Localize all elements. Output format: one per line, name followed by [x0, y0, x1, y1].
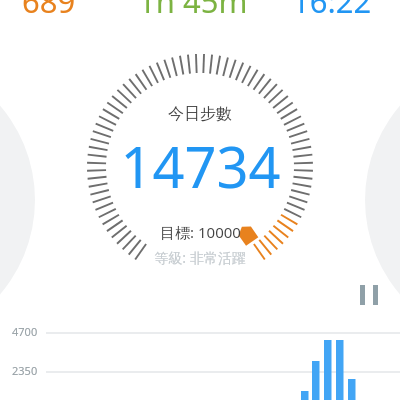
staticText: 689: [22, 0, 76, 22]
staticText: 14734: [120, 128, 281, 204]
staticText: 目標: 10000: [160, 222, 241, 242]
staticText: 等級: 非常活躍: [154, 248, 246, 267]
button[interactable]: 689: [22, 0, 76, 22]
button[interactable]: Today's steps 14734, goal 10000: [85, 52, 315, 282]
staticText: 16:22: [292, 0, 372, 22]
staticText: 2350: [12, 363, 38, 378]
button[interactable]: 1h 45m: [138, 0, 248, 22]
button[interactable]: 16:22: [292, 0, 372, 22]
button[interactable]: Hourly step chart: [0, 0, 400, 400]
staticText: 1h 45m: [138, 0, 248, 22]
staticText: 今日步數: [168, 104, 232, 124]
staticText: 4700: [12, 324, 38, 339]
button[interactable]: Pause: [352, 278, 386, 312]
